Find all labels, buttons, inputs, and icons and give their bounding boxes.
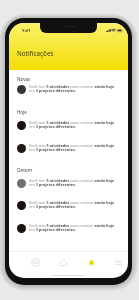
button[interactable]: Você tem 5 atividades para concluir aind… bbox=[9, 80, 128, 98]
staticText: Você tem 5 atividades para concluir aind… bbox=[29, 200, 115, 210]
staticText: Você tem 5 atividades para concluir aind… bbox=[29, 143, 115, 153]
staticText: Você tem 5 atividades para concluir aind… bbox=[29, 178, 115, 188]
staticText: Novas bbox=[17, 76, 31, 82]
button[interactable]: Menu bbox=[110, 252, 126, 272]
button[interactable]: Você tem 5 atividades para concluir aind… bbox=[9, 219, 128, 237]
button[interactable]: Você tem 5 atividades para concluir aind… bbox=[9, 139, 128, 157]
staticText: Notificações bbox=[17, 49, 54, 57]
staticText: Você tem 5 atividades para concluir aind… bbox=[29, 120, 115, 130]
button[interactable]: Home bbox=[55, 252, 71, 272]
button[interactable]: Dashboard bbox=[27, 252, 43, 272]
staticText: Você tem 5 atividades para concluir aind… bbox=[29, 223, 115, 233]
button[interactable]: Você tem 5 atividades para concluir aind… bbox=[9, 116, 128, 134]
staticText: 9:41 bbox=[22, 28, 31, 34]
button[interactable]: Você tem 5 atividades para concluir aind… bbox=[9, 174, 128, 192]
staticText: Ontem bbox=[17, 167, 32, 173]
button[interactable]: Você tem 5 atividades para concluir aind… bbox=[9, 196, 128, 214]
button[interactable]: Notifications bbox=[83, 252, 99, 272]
staticText: Hoje bbox=[17, 109, 27, 115]
staticText: Você tem 5 atividades para concluir aind… bbox=[29, 84, 115, 94]
